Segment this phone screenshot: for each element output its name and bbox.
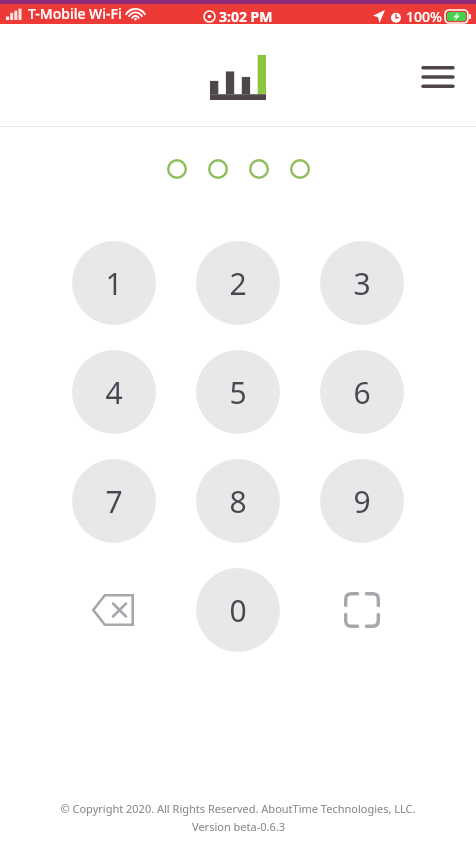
button[interactable]: Menu <box>414 53 462 101</box>
staticText: © Copyright 2020. All Rights Reserved. A… <box>60 801 416 816</box>
staticText: 6 <box>353 372 371 413</box>
staticText: 4 <box>105 372 123 413</box>
staticText: 3:02 PM <box>219 7 273 26</box>
button[interactable]: 5 <box>196 350 280 434</box>
staticText: 5 <box>229 372 247 413</box>
button[interactable]: Backspace <box>72 568 156 652</box>
button[interactable]: 0 <box>196 568 280 652</box>
staticText: 8 <box>229 481 247 522</box>
staticText: 3 <box>353 263 371 304</box>
button[interactable]: 7 <box>72 459 156 543</box>
button[interactable]: 6 <box>320 350 404 434</box>
button[interactable]: 2 <box>196 241 280 325</box>
button[interactable]: 9 <box>320 459 404 543</box>
button[interactable]: 1 <box>72 241 156 325</box>
staticText: 2 <box>229 263 247 304</box>
button[interactable]: 8 <box>196 459 280 543</box>
staticText: 1 <box>105 263 123 304</box>
staticText: 0 <box>229 590 247 631</box>
staticText: T-Mobile Wi-Fi <box>28 4 122 23</box>
button[interactable]: Scan code <box>320 568 404 652</box>
staticText: 9 <box>353 481 371 522</box>
staticText: 7 <box>105 481 123 522</box>
button[interactable]: 4 <box>72 350 156 434</box>
staticText: Version beta-0.6.3 <box>192 819 285 834</box>
button[interactable]: 3 <box>320 241 404 325</box>
staticText: 100% <box>406 7 442 26</box>
